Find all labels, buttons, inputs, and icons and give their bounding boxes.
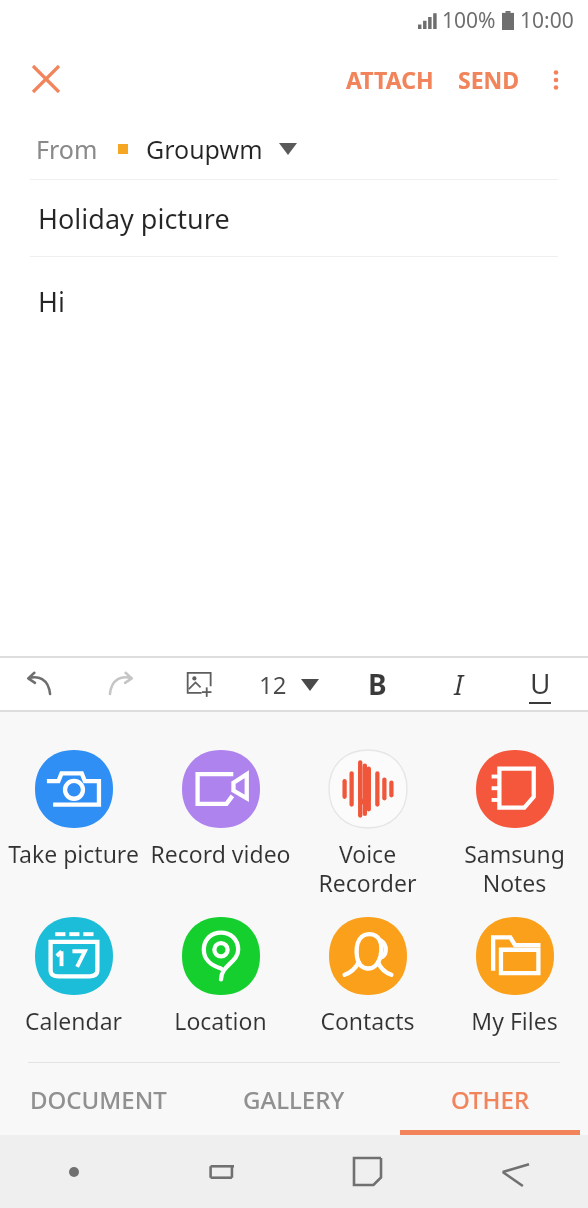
staticText: From	[36, 132, 98, 166]
button[interactable]: OTHER	[392, 1063, 588, 1135]
button[interactable]: Redo	[80, 658, 160, 710]
button[interactable]: From	[0, 118, 588, 179]
staticText: 10:00	[520, 6, 574, 35]
button[interactable]: Take picture	[0, 746, 147, 873]
button[interactable]: Home	[294, 1135, 441, 1208]
button[interactable]: Voice Recorder	[294, 746, 441, 903]
staticText: U	[530, 664, 551, 702]
staticText: Take picture	[0, 838, 147, 869]
staticText: Holiday picture	[38, 200, 230, 237]
staticText: OTHER	[451, 1083, 530, 1116]
button[interactable]: More options	[532, 56, 580, 104]
staticText: Groupwm	[146, 132, 263, 166]
button[interactable]: Location	[147, 913, 294, 1040]
staticText: Record video	[147, 838, 294, 869]
button[interactable]: Calendar	[0, 913, 147, 1040]
staticText: 12	[259, 668, 287, 701]
staticText: I	[454, 665, 464, 703]
button[interactable]: Samsung Notes	[441, 746, 588, 903]
staticText: 100%	[442, 6, 496, 35]
button[interactable]: Close	[22, 55, 70, 103]
button[interactable]: I	[418, 658, 499, 710]
button[interactable]: Recents	[147, 1135, 294, 1208]
button[interactable]: SEND	[446, 52, 532, 107]
button[interactable]: Insert image	[160, 658, 240, 710]
button[interactable]: Undo	[0, 658, 80, 710]
button[interactable]: My Files	[441, 913, 588, 1040]
button[interactable]: Menu dot	[0, 1135, 147, 1208]
button[interactable]: 12	[240, 658, 337, 710]
staticText: My Files	[441, 1005, 588, 1036]
staticText: Samsung Notes	[441, 838, 588, 899]
button[interactable]: DOCUMENT	[0, 1063, 196, 1135]
button[interactable]: U	[499, 658, 580, 710]
staticText: B	[368, 665, 387, 703]
staticText: ATTACH	[346, 64, 434, 95]
staticText: SEND	[458, 64, 520, 95]
button[interactable]: Record video	[147, 746, 294, 873]
staticText: DOCUMENT	[30, 1083, 167, 1116]
button[interactable]: Back	[441, 1135, 588, 1208]
staticText: Hi	[38, 283, 65, 320]
button[interactable]: ATTACH	[334, 52, 446, 107]
staticText: Contacts	[294, 1005, 441, 1036]
button[interactable]: B	[337, 658, 418, 710]
button[interactable]: Holiday picture	[0, 180, 588, 256]
button[interactable]: GALLERY	[196, 1063, 392, 1135]
staticText: Voice Recorder	[294, 838, 441, 899]
button[interactable]: Contacts	[294, 913, 441, 1040]
staticText: Calendar	[0, 1005, 147, 1036]
staticText: Location	[147, 1005, 294, 1036]
staticText: GALLERY	[243, 1083, 345, 1116]
button[interactable]: Hi	[0, 257, 588, 656]
